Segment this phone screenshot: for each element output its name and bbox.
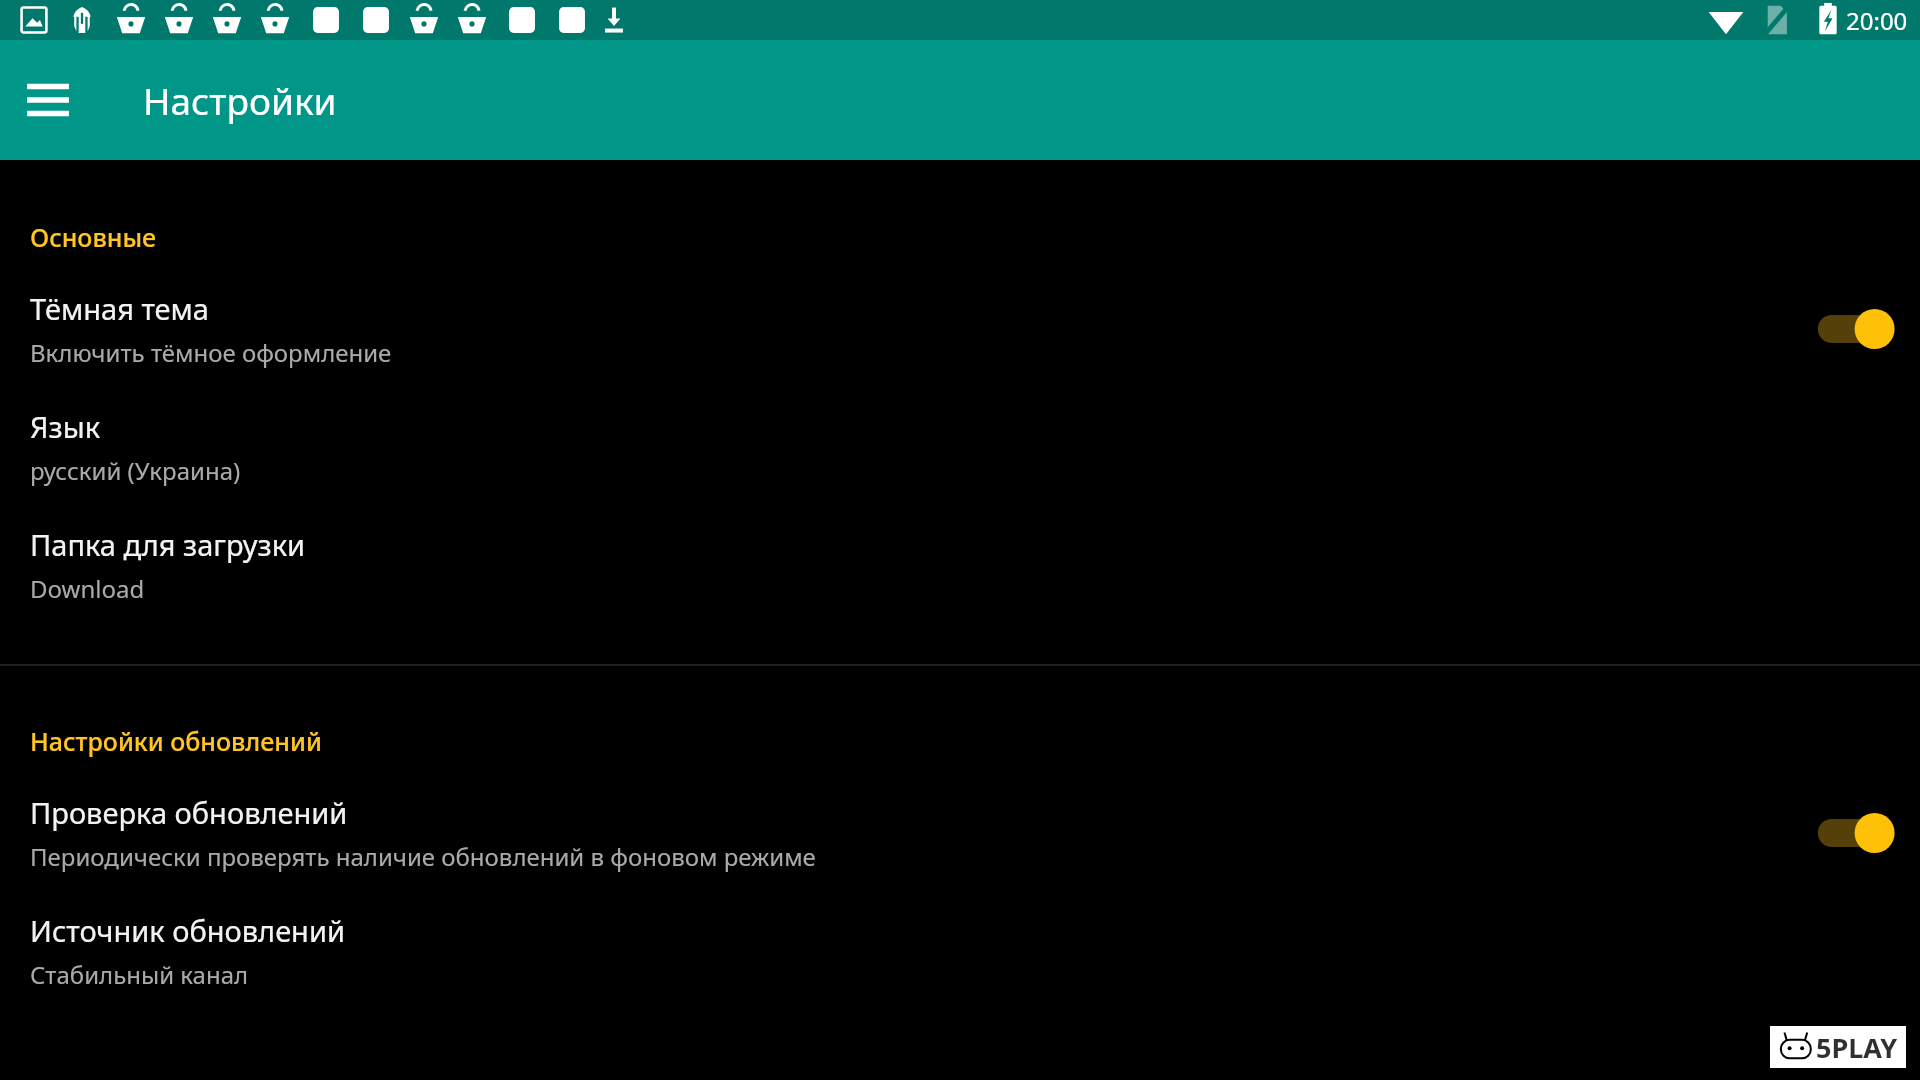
staticText: 5PLAY [1816, 1029, 1898, 1066]
button[interactable]: Источник обновлений [0, 892, 1920, 1010]
staticText: Основные [30, 220, 1920, 254]
staticText: русский (Украина) [30, 454, 241, 487]
button[interactable]: Язык [0, 388, 1920, 506]
staticText: Источник обновлений [30, 911, 345, 950]
staticText: Настройки обновлений [30, 724, 1920, 758]
staticText: Проверка обновлений [30, 793, 348, 832]
staticText: Тёмная тема [30, 289, 209, 328]
staticText: Язык [30, 407, 101, 446]
staticText: Настройки [143, 75, 337, 125]
staticText: Стабильный канал [30, 958, 249, 991]
staticText: 20:00 [1846, 4, 1908, 37]
button[interactable]: Open navigation drawer [18, 70, 78, 130]
button[interactable]: Тёмная тема [0, 270, 1920, 388]
staticText: Включить тёмное оформление [30, 336, 392, 369]
button[interactable]: Проверка обновлений [0, 774, 1920, 892]
button[interactable]: Toggle: Проверка обновлений [1816, 805, 1906, 861]
button[interactable]: Папка для загрузки [0, 506, 1920, 624]
staticText: Периодически проверять наличие обновлени… [30, 840, 816, 873]
staticText: Download [30, 572, 145, 605]
staticText: Папка для загрузки [30, 525, 306, 564]
button[interactable]: Toggle: Тёмная тема [1816, 301, 1906, 357]
